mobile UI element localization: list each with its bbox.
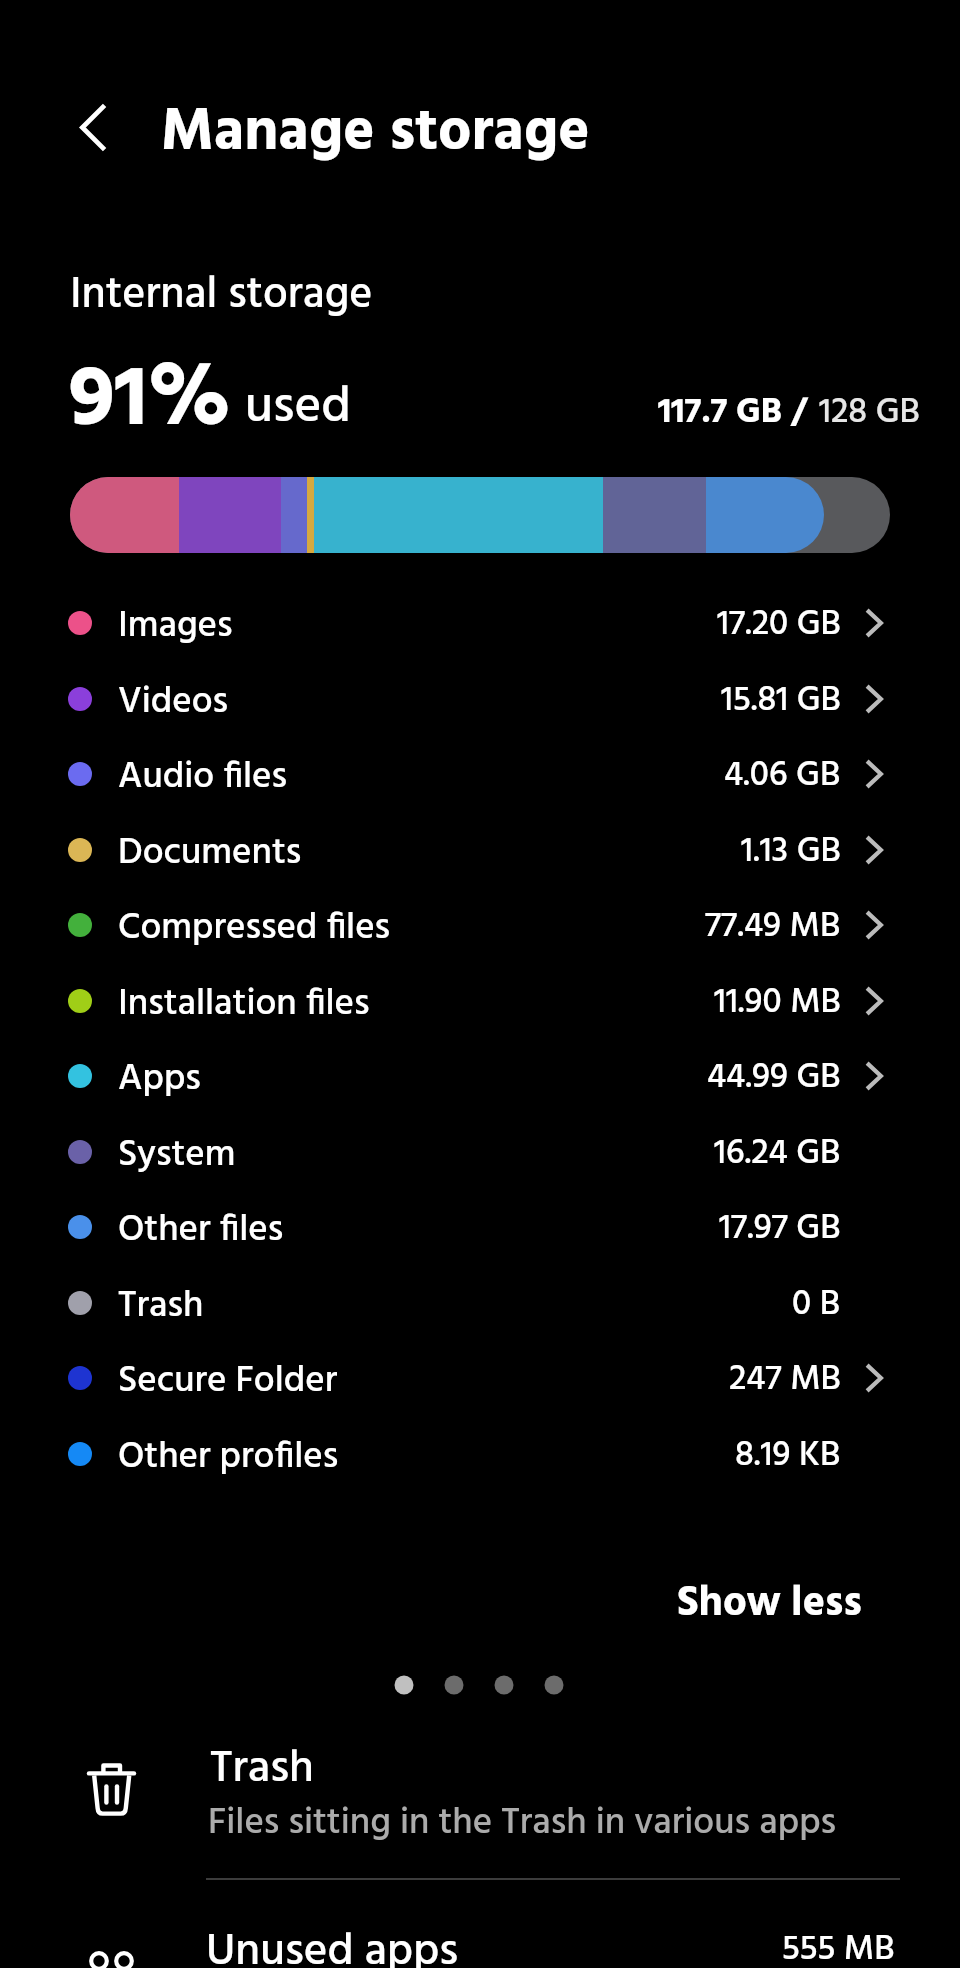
- staticText: Images: [118, 597, 233, 656]
- staticText: Trash: [210, 1734, 314, 1806]
- staticText: 8.19 KB: [735, 1428, 841, 1484]
- button[interactable]: Other profiles: [0, 1416, 960, 1492]
- button[interactable]: Trash: [0, 1265, 960, 1341]
- staticText: Manage storage: [161, 87, 590, 181]
- staticText: 117.7 GB /: [658, 385, 807, 441]
- staticText: 11.90 MB: [714, 975, 841, 1031]
- staticText: Apps: [118, 1050, 201, 1109]
- staticText: 44.99 GB: [707, 1050, 841, 1106]
- button[interactable]: Compressed files: [0, 887, 960, 963]
- staticText: 1.13 GB: [741, 824, 841, 880]
- staticText: used: [245, 367, 351, 449]
- staticText: 77.49 MB: [705, 899, 841, 955]
- staticText: Show less: [677, 1571, 862, 1638]
- button[interactable]: System: [0, 1114, 960, 1190]
- staticText: Documents: [118, 824, 302, 883]
- button[interactable]: Other files: [0, 1189, 960, 1265]
- button[interactable]: Show less: [641, 1558, 901, 1650]
- staticText: Secure Folder: [118, 1352, 338, 1411]
- staticText: 4.06 GB: [724, 748, 841, 804]
- button[interactable]: Unused apps: [0, 1880, 960, 1968]
- staticText: Other files: [118, 1201, 284, 1260]
- staticText: Audio files: [118, 748, 287, 807]
- staticText: Installation files: [118, 975, 370, 1034]
- staticText: Videos: [118, 673, 229, 732]
- button[interactable]: Audio files: [0, 736, 960, 812]
- staticText: Unused apps: [206, 1917, 459, 1968]
- button[interactable]: Installation files: [0, 963, 960, 1039]
- button[interactable]: Documents: [0, 812, 960, 888]
- staticText: Trash: [118, 1277, 204, 1336]
- staticText: Files sitting in the Trash in various ap…: [208, 1794, 837, 1853]
- staticText: Compressed files: [118, 899, 391, 958]
- button[interactable]: Videos: [0, 661, 960, 737]
- button[interactable]: Secure Folder: [0, 1340, 960, 1416]
- button[interactable]: Trash: [0, 1714, 960, 1868]
- staticText: Other profiles: [118, 1428, 339, 1487]
- staticText: 128 GB: [819, 385, 920, 441]
- button[interactable]: Apps: [0, 1038, 960, 1114]
- staticText: 16.24 GB: [714, 1126, 841, 1182]
- staticText: 555 MB: [782, 1922, 895, 1968]
- staticText: Internal storage: [70, 261, 373, 331]
- staticText: System: [118, 1126, 236, 1185]
- staticText: 0 B: [792, 1277, 841, 1333]
- staticText: 15.81 GB: [721, 673, 841, 729]
- button[interactable]: Images: [0, 585, 960, 661]
- button[interactable]: Navigate up: [58, 86, 128, 168]
- staticText: 17.20 GB: [717, 597, 841, 653]
- staticText: 91%: [69, 333, 232, 471]
- staticText: 17.97 GB: [719, 1201, 841, 1257]
- staticText: 247 MB: [729, 1352, 841, 1408]
